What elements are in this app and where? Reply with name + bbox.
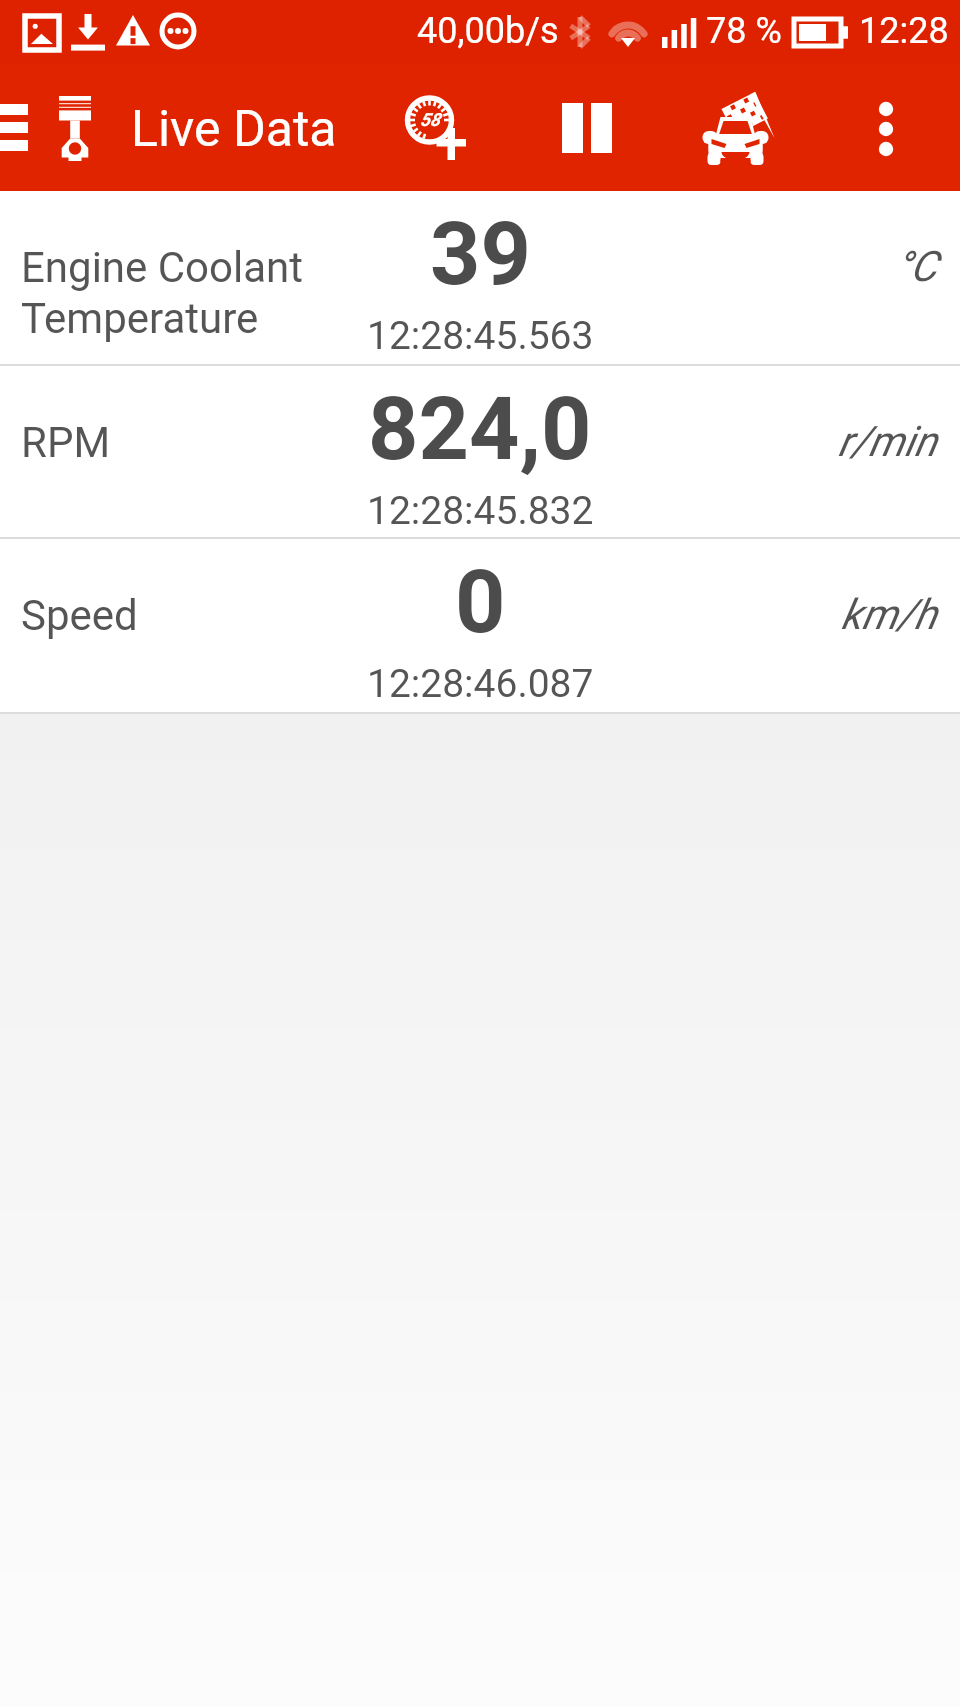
staticText: 12:28:45.563: [367, 313, 594, 359]
staticText: km/h: [841, 590, 937, 639]
button[interactable]: Pause: [545, 86, 631, 170]
staticText: 12:28:46.087: [367, 661, 594, 707]
staticText: 78 %: [706, 10, 782, 52]
staticText: Live Data: [131, 100, 337, 159]
staticText: 0: [455, 550, 506, 653]
staticText: 39: [430, 202, 531, 305]
button[interactable]: Add gauge: [396, 86, 480, 170]
button[interactable]: Navigation menu: [0, 64, 48, 191]
staticText: 58: [420, 109, 441, 130]
staticText: 12:28: [859, 10, 949, 52]
staticText: 40,00b/s: [417, 10, 559, 52]
staticText: Speed: [21, 591, 138, 640]
staticText: 12:28:45.832: [367, 488, 594, 534]
staticText: r/min: [838, 417, 937, 466]
button[interactable]: Engine: [48, 64, 104, 191]
button[interactable]: More options: [852, 86, 924, 170]
staticText: 824,0: [368, 377, 592, 480]
button[interactable]: Race mode: [703, 89, 783, 173]
button[interactable]: Engine Coolant Temperature: [0, 191, 960, 364]
button[interactable]: Speed: [0, 539, 960, 712]
staticText: RPM: [21, 418, 111, 467]
button[interactable]: RPM: [0, 366, 960, 537]
staticText: °C: [895, 242, 937, 291]
staticText: Engine Coolant Temperature: [21, 243, 303, 344]
